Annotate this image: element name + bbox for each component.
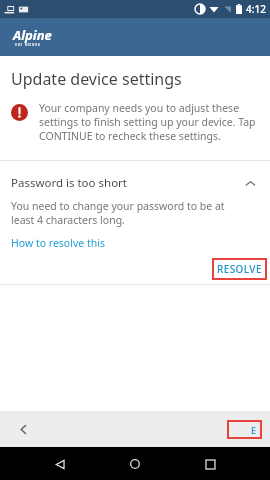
staticText: 4:12 — [246, 2, 266, 16]
staticText: How to resolve this — [11, 236, 105, 250]
staticText: RESOLVE — [217, 262, 262, 276]
staticText: E — [251, 424, 257, 436]
staticText: Password is too short — [11, 175, 240, 191]
button[interactable]: Back — [45, 449, 75, 479]
button[interactable]: Password is too short — [0, 161, 270, 199]
button[interactable]: E — [227, 420, 262, 439]
button[interactable]: Home — [120, 449, 150, 479]
other: Collapse — [240, 173, 260, 193]
button[interactable]: RESOLVE — [212, 258, 267, 280]
button[interactable]: Back — [10, 416, 36, 442]
staticText: Update device settings — [11, 68, 182, 90]
button[interactable]: How to resolve this — [11, 236, 105, 250]
staticText: SKI HOUSE — [15, 42, 41, 47]
button[interactable]: Recent apps — [195, 449, 225, 479]
staticText: Your company needs you to adjust these s… — [39, 101, 256, 143]
staticText: You need to change your password to be a… — [11, 199, 248, 227]
staticText: Alpine — [13, 26, 52, 44]
